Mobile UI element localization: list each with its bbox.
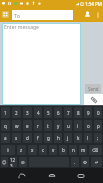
staticText: c (42, 147, 45, 153)
button[interactable]: Add contact (82, 9, 93, 20)
staticText: ; (97, 135, 99, 141)
staticText: Send (88, 86, 99, 92)
button[interactable]: s (12, 133, 21, 143)
staticText: ⚙ (83, 160, 88, 165)
button[interactable]: 7 (64, 107, 72, 118)
button[interactable]: 4 (34, 107, 42, 118)
staticText: n (72, 147, 75, 153)
button[interactable]: 8 (74, 107, 82, 118)
button[interactable]: n (69, 145, 77, 155)
staticText: 8 (77, 110, 80, 116)
button[interactable]: f (34, 133, 42, 143)
button[interactable]: To (12, 10, 73, 20)
staticText: q (4, 123, 7, 129)
staticText: a (4, 135, 7, 141)
staticText: 123 (10, 157, 17, 167)
staticText: ↵ (95, 160, 99, 165)
button[interactable]: q (1, 120, 10, 131)
staticText: ⊘ (21, 160, 25, 165)
button[interactable]: v (49, 145, 57, 155)
staticText: k (77, 135, 80, 141)
button[interactable]: p (94, 120, 102, 131)
button[interactable]: x (28, 145, 37, 155)
staticText: u (67, 123, 70, 129)
button[interactable]: Language (19, 157, 27, 167)
button[interactable]: ; (94, 133, 102, 143)
button[interactable]: 5 (44, 107, 52, 118)
button[interactable]: Enter (91, 157, 102, 167)
staticText: ⌫ (92, 148, 99, 153)
button[interactable]: 2 (12, 107, 21, 118)
staticText: w (15, 123, 19, 129)
staticText: h (57, 135, 60, 141)
staticText: 1:54 PM (85, 1, 102, 7)
staticText: g (47, 135, 50, 141)
button[interactable]: 9 (84, 107, 92, 118)
button[interactable]: k (74, 133, 82, 143)
button[interactable]: 0 (94, 107, 102, 118)
button[interactable]: l (84, 133, 92, 143)
button[interactable]: Back (15, 169, 29, 183)
staticText: 6 (57, 110, 60, 116)
staticText: s (15, 135, 18, 141)
button[interactable]: u (64, 120, 72, 131)
button[interactable]: 1 (1, 107, 10, 118)
staticText: 9 (87, 110, 90, 116)
button[interactable]: w (12, 120, 21, 131)
button[interactable]: b (59, 145, 67, 155)
staticText: x (31, 147, 34, 153)
button[interactable]: Send (85, 84, 101, 93)
button[interactable]: z (17, 145, 26, 155)
staticText: ☺ (2, 160, 7, 165)
button[interactable]: e (23, 120, 32, 131)
button[interactable]: More options (93, 10, 102, 19)
button[interactable]: m (79, 145, 87, 155)
staticText: p (97, 123, 100, 129)
staticText: f (37, 135, 39, 141)
staticText: t (47, 123, 49, 129)
button[interactable]: o (84, 120, 92, 131)
button[interactable]: d (23, 133, 32, 143)
staticText: 7 (67, 110, 70, 116)
button[interactable]: y (54, 120, 62, 131)
staticText: b (62, 147, 65, 153)
button[interactable]: j (64, 133, 72, 143)
button[interactable]: Backspace (89, 145, 102, 155)
staticText: z (20, 147, 23, 153)
button[interactable]: 6 (54, 107, 62, 118)
staticText: o (87, 123, 90, 129)
button[interactable]: Emoji (1, 157, 8, 167)
button[interactable]: r (34, 120, 42, 131)
button[interactable]: Attach (84, 94, 103, 105)
button[interactable]: Settings (81, 157, 89, 167)
staticText: To (14, 12, 21, 19)
button[interactable]: a (1, 133, 10, 143)
button[interactable]: g (44, 133, 52, 143)
staticText: l (87, 135, 89, 141)
staticText: . (74, 159, 76, 165)
button[interactable]: . (71, 157, 79, 167)
staticText: r (37, 123, 39, 129)
button[interactable]: Apps (2, 11, 9, 18)
staticText: d (26, 135, 29, 141)
staticText: 4 (37, 110, 40, 116)
button[interactable]: t (44, 120, 52, 131)
staticText: 1 (4, 110, 7, 116)
staticText: ⇧ (6, 148, 10, 153)
button[interactable]: c (39, 145, 47, 155)
button[interactable]: i (74, 120, 82, 131)
staticText: Enter message (4, 24, 39, 31)
staticText: j (67, 135, 69, 141)
button[interactable]: 3 (23, 107, 32, 118)
staticText: 5 (47, 110, 50, 116)
button[interactable]: Recents (74, 169, 88, 183)
staticText: v (52, 147, 55, 153)
button[interactable]: Numbers (10, 157, 17, 167)
staticText: e (26, 123, 29, 129)
button[interactable]: h (54, 133, 62, 143)
button[interactable]: Shift (1, 145, 15, 155)
button[interactable]: Enter message (2, 23, 81, 105)
staticText: 3 (26, 110, 29, 116)
button[interactable]: Home (45, 169, 59, 183)
